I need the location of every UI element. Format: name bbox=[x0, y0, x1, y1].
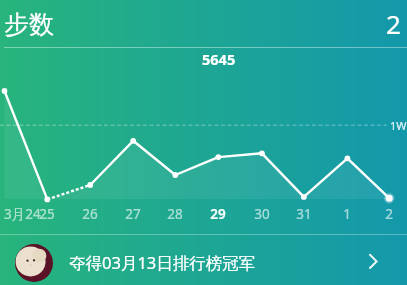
staticText: 2 bbox=[386, 6, 401, 41]
staticText: 31 bbox=[274, 205, 334, 223]
other: Open ranking bbox=[367, 250, 387, 270]
staticText: 2 bbox=[359, 205, 407, 223]
staticText: 29 bbox=[188, 205, 248, 223]
button[interactable]: 2 bbox=[373, 0, 407, 48]
staticText: 28 bbox=[145, 205, 205, 223]
staticText: 夺得03月13日排行榜冠军 bbox=[69, 251, 256, 274]
staticText: 27 bbox=[103, 205, 163, 223]
staticText: 1 bbox=[317, 205, 377, 223]
staticText: 30 bbox=[232, 205, 292, 223]
staticText: 5645 bbox=[202, 49, 236, 69]
staticText: 1W bbox=[390, 118, 407, 133]
staticText: 25 bbox=[17, 205, 77, 223]
staticText: 26 bbox=[60, 205, 120, 223]
staticText: 3月24 bbox=[4, 205, 64, 223]
button[interactable]: 步数 bbox=[0, 0, 64, 48]
staticText: 步数 bbox=[4, 9, 54, 40]
button[interactable]: 夺得03月13日排行榜冠军 bbox=[0, 234, 407, 285]
